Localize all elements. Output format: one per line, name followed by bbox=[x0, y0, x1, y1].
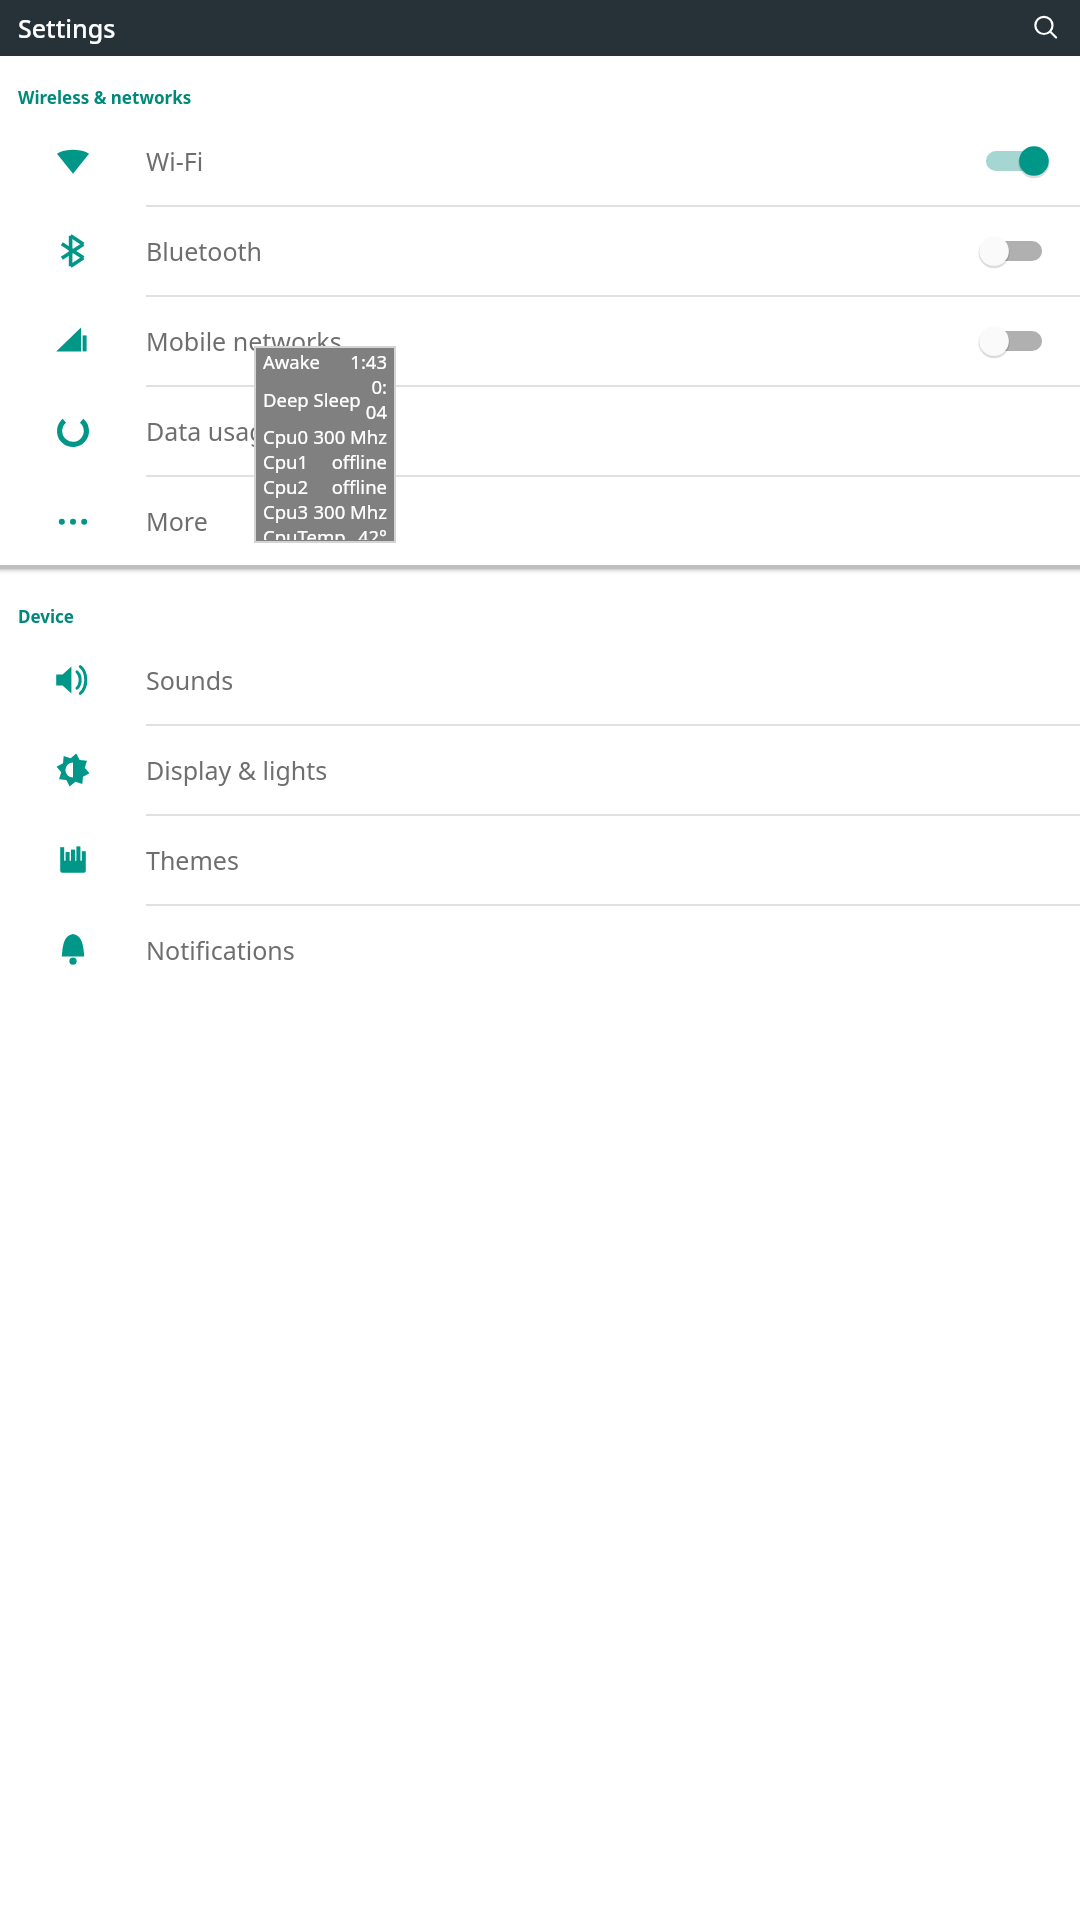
staticText: Themes bbox=[146, 843, 1080, 877]
button[interactable] bbox=[976, 229, 1052, 273]
staticText: CpuTemp bbox=[263, 524, 346, 540]
staticText: Data usage bbox=[146, 414, 1080, 448]
staticText: Sounds bbox=[146, 663, 1080, 697]
button[interactable]: Mobile networks bbox=[0, 297, 1080, 385]
button[interactable]: Display & lights bbox=[0, 726, 1080, 814]
staticText: Mobile networks bbox=[146, 324, 976, 358]
staticText: Device bbox=[18, 605, 74, 628]
staticText: 42° C bbox=[346, 524, 387, 540]
staticText: Wi-Fi bbox=[146, 144, 976, 178]
button[interactable]: Wi-Fi bbox=[0, 117, 1080, 205]
staticText: Settings bbox=[18, 11, 116, 45]
staticText: 0:04 bbox=[361, 374, 387, 424]
button[interactable] bbox=[976, 139, 1052, 183]
staticText: 300 Mhz bbox=[309, 499, 387, 524]
button[interactable]: Bluetooth bbox=[0, 207, 1080, 295]
button[interactable]: Data usage bbox=[0, 387, 1080, 475]
staticText: Cpu3 bbox=[263, 499, 309, 524]
staticText: 1:43 bbox=[321, 349, 387, 374]
button[interactable]: Notifications bbox=[0, 906, 1080, 994]
staticText: Cpu0 bbox=[263, 424, 309, 449]
staticText: More bbox=[146, 504, 1080, 538]
staticText: Awake bbox=[263, 349, 321, 374]
button[interactable]: More bbox=[0, 477, 1080, 565]
staticText: offline bbox=[309, 449, 387, 474]
staticText: 300 Mhz bbox=[309, 424, 387, 449]
staticText: offline bbox=[309, 474, 387, 499]
button[interactable] bbox=[976, 319, 1052, 363]
staticText: Bluetooth bbox=[146, 234, 976, 268]
button[interactable]: Sounds bbox=[0, 636, 1080, 724]
button[interactable]: Search bbox=[1022, 4, 1070, 52]
staticText: Wireless & networks bbox=[18, 86, 192, 109]
staticText: Deep Sleep bbox=[263, 387, 361, 412]
staticText: Cpu1 bbox=[263, 449, 309, 474]
staticText: Cpu2 bbox=[263, 474, 309, 499]
staticText: Display & lights bbox=[146, 753, 1080, 787]
staticText: Notifications bbox=[146, 933, 1080, 967]
button[interactable]: Themes bbox=[0, 816, 1080, 904]
